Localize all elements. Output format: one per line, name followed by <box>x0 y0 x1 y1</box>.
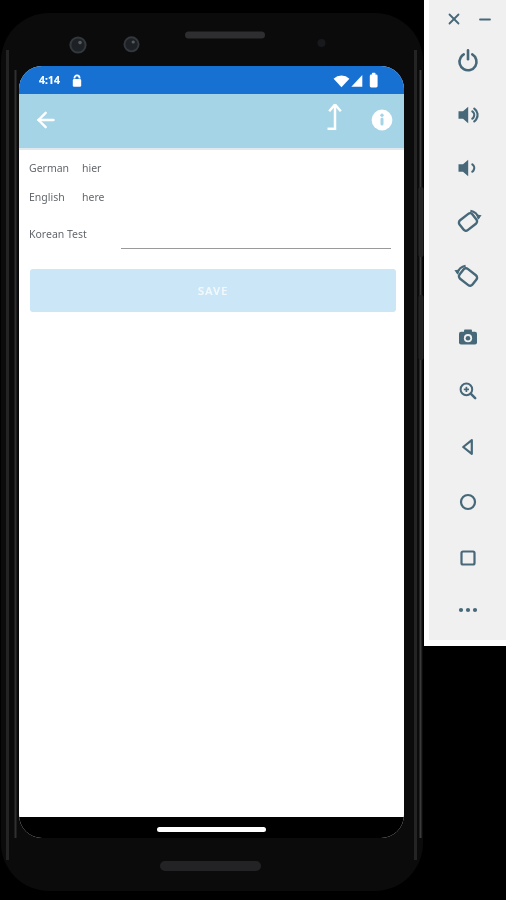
button[interactable] <box>453 487 483 517</box>
button[interactable] <box>453 595 483 625</box>
staticText: SAVE <box>198 283 229 298</box>
button[interactable] <box>366 104 398 136</box>
staticText: hier <box>82 161 102 175</box>
button[interactable] <box>453 432 483 462</box>
button[interactable] <box>474 8 496 30</box>
button[interactable] <box>453 100 483 130</box>
button[interactable] <box>453 153 483 183</box>
staticText: here <box>82 190 105 204</box>
staticText: Korean Test <box>29 227 87 241</box>
button[interactable] <box>453 323 483 353</box>
button[interactable] <box>453 46 483 76</box>
button[interactable] <box>28 102 64 138</box>
staticText: 4:14 <box>39 73 60 87</box>
button[interactable] <box>316 100 352 136</box>
staticText: English <box>29 190 65 204</box>
button[interactable] <box>453 207 483 237</box>
button[interactable] <box>19 94 404 148</box>
button[interactable] <box>157 827 266 832</box>
staticText: German <box>29 161 70 175</box>
button[interactable] <box>453 262 483 292</box>
button[interactable] <box>443 8 465 30</box>
button[interactable] <box>453 376 483 406</box>
button[interactable] <box>453 543 483 573</box>
